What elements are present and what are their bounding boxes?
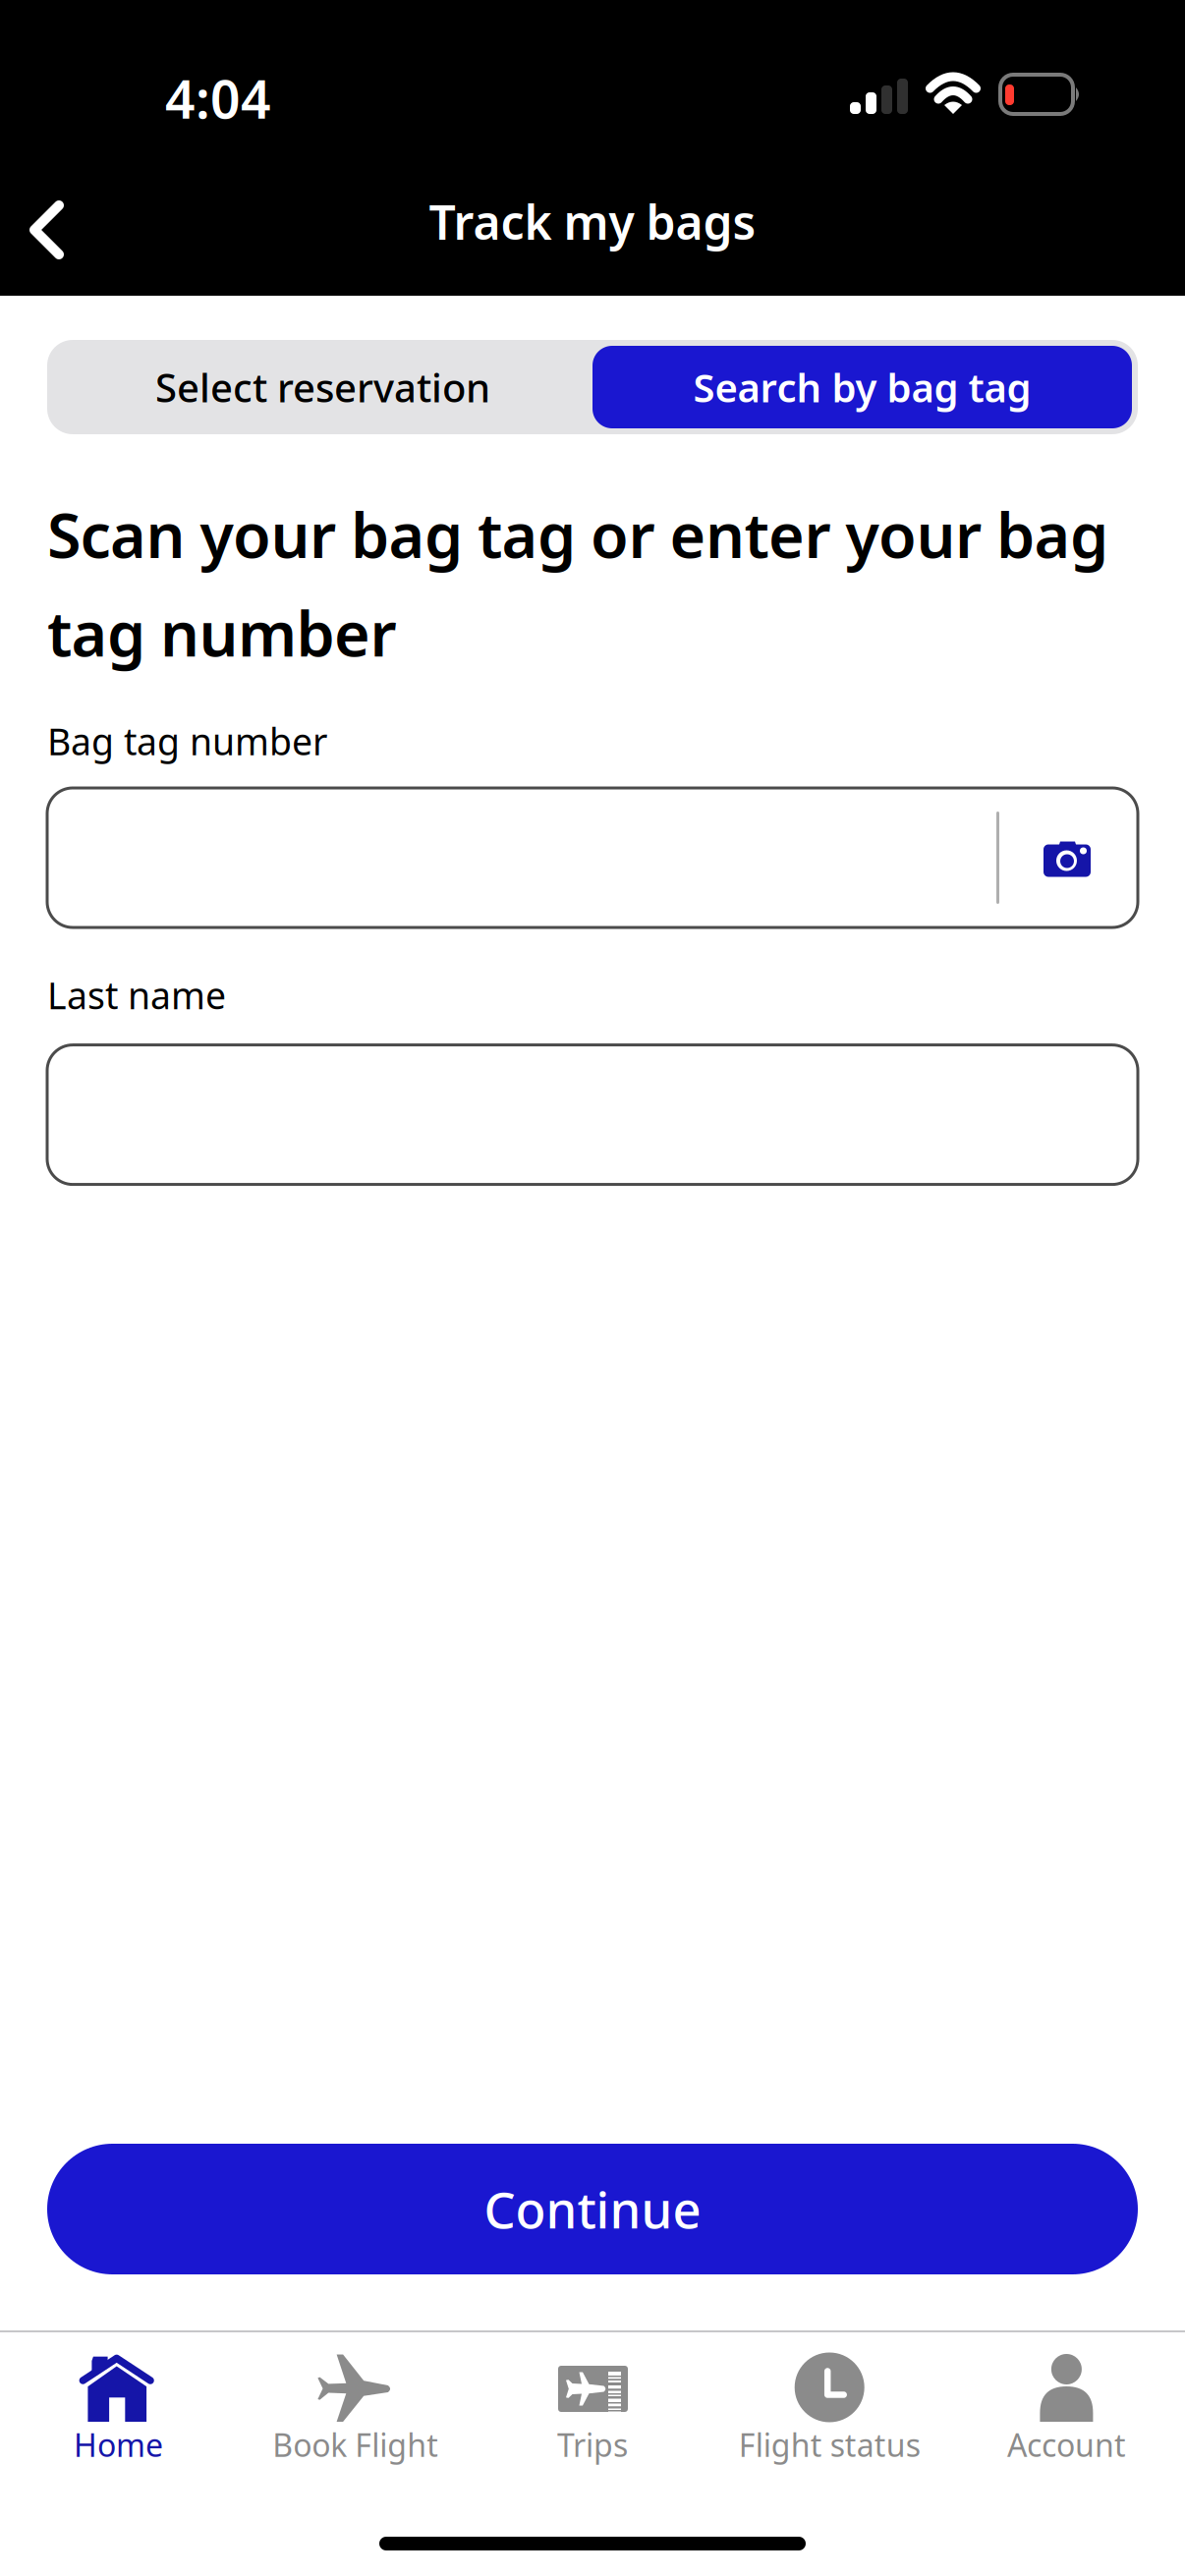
- staticText: Select reservation: [155, 361, 490, 413]
- staticText: Trips: [557, 2424, 628, 2465]
- button[interactable]: Account: [948, 2353, 1185, 2465]
- staticText: Book Flight: [272, 2424, 439, 2465]
- staticText: Flight status: [739, 2424, 920, 2465]
- button[interactable]: Flight status: [711, 2353, 948, 2465]
- button[interactable]: Trips: [474, 2353, 711, 2465]
- staticText: 4:04: [165, 63, 271, 133]
- staticText: Bag tag number: [47, 717, 327, 765]
- staticText: Home: [74, 2424, 163, 2465]
- staticText: Track my bags: [429, 190, 756, 253]
- button[interactable]: Continue: [47, 2144, 1138, 2274]
- staticText: Last name: [47, 971, 226, 1019]
- button[interactable]: Select reservation: [53, 346, 592, 428]
- button[interactable]: Scan bag tag: [999, 788, 1138, 927]
- staticText: Account: [1007, 2424, 1126, 2465]
- staticText: Scan your bag tag or enter your bag tag …: [47, 493, 1108, 673]
- button[interactable]: Book Flight: [237, 2353, 474, 2465]
- staticText: Search by bag tag: [693, 361, 1031, 413]
- button[interactable]: Back: [0, 147, 110, 296]
- staticText: Continue: [484, 2176, 701, 2242]
- button[interactable]: Search by bag tag: [592, 346, 1132, 428]
- button[interactable]: Home: [0, 2353, 237, 2465]
